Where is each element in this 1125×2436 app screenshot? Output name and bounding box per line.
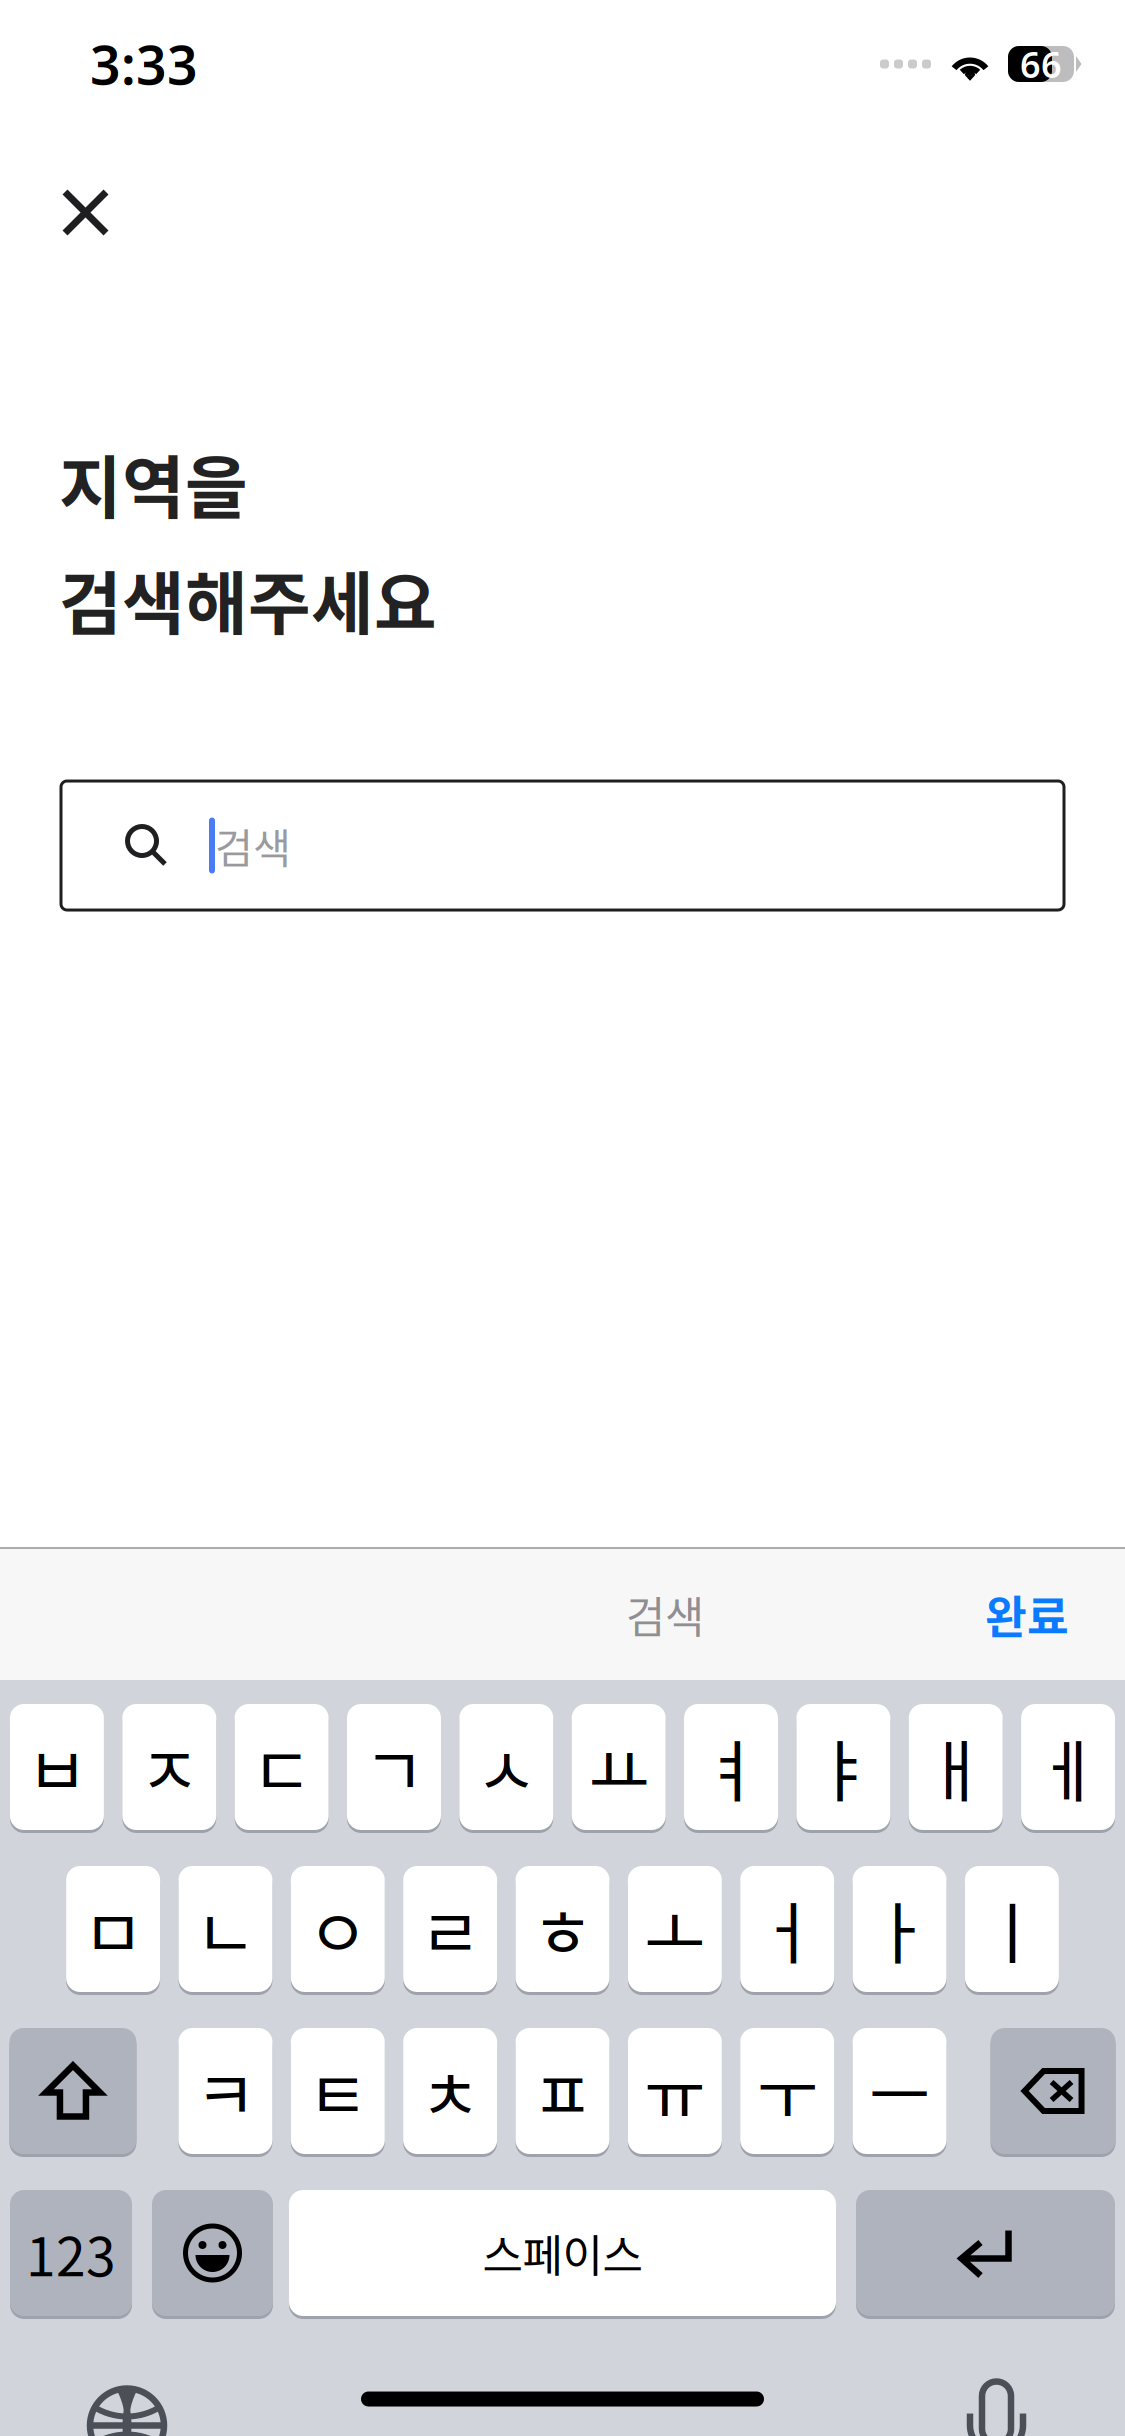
staticText: 검색해주세요 <box>59 550 437 648</box>
button[interactable]: ㅗ <box>628 1866 722 1992</box>
staticText: ㅌ <box>307 2043 368 2139</box>
button[interactable]: Delete <box>990 2028 1115 2154</box>
button[interactable]: 스페이스 <box>289 2190 836 2316</box>
button[interactable]: ㅜ <box>740 2028 834 2154</box>
staticText: ㄷ <box>251 1719 312 1815</box>
staticText: ㅇ <box>307 1881 368 1977</box>
staticText: ㅛ <box>588 1719 649 1815</box>
staticText: 스페이스 <box>482 2221 642 2285</box>
button[interactable]: ㄴ <box>178 1866 272 1992</box>
button[interactable]: Return <box>856 2190 1115 2316</box>
button[interactable]: ㅣ <box>965 1866 1059 1992</box>
button[interactable]: Emoji <box>152 2190 273 2316</box>
staticText: ㅕ <box>700 1719 761 1815</box>
button[interactable]: ㅇ <box>291 1866 385 1992</box>
button[interactable]: ㅌ <box>291 2028 385 2154</box>
button[interactable]: ㅛ <box>572 1704 666 1830</box>
staticText: 123 <box>26 2214 116 2292</box>
button[interactable]: ㄱ <box>347 1704 441 1830</box>
staticText: 검색 <box>215 816 291 875</box>
staticText: ㅠ <box>644 2043 705 2139</box>
staticText: ㅑ <box>813 1719 874 1815</box>
button[interactable]: Close <box>40 167 131 258</box>
button[interactable]: Next keyboard <box>87 2385 167 2436</box>
button[interactable]: 완료 <box>963 1557 1091 1672</box>
button[interactable]: ㅕ <box>684 1704 778 1830</box>
staticText: ㅎ <box>532 1881 593 1977</box>
button[interactable]: ㄷ <box>235 1704 329 1830</box>
button[interactable]: ㅓ <box>740 1866 834 1992</box>
button[interactable]: ㅊ <box>403 2028 497 2154</box>
button[interactable]: ㅏ <box>853 1866 947 1992</box>
staticText: ㅓ <box>757 1881 818 1977</box>
button[interactable]: ㄹ <box>403 1866 497 1992</box>
button[interactable]: ㅈ <box>122 1704 216 1830</box>
staticText: 66 <box>1020 40 1062 88</box>
staticText: ㅂ <box>26 1719 87 1815</box>
staticText: ㅏ <box>869 1881 930 1977</box>
button[interactable]: Dictate <box>967 2381 1026 2436</box>
button[interactable]: ㅍ <box>515 2028 609 2154</box>
staticText: ㅣ <box>981 1881 1042 1977</box>
staticText: ㅋ <box>195 2043 256 2139</box>
staticText: 3:33 <box>90 29 198 99</box>
button[interactable]: ㅠ <box>628 2028 722 2154</box>
button[interactable]: Shift <box>9 2028 136 2154</box>
staticText: ㄹ <box>420 1881 481 1977</box>
button[interactable]: ㅑ <box>796 1704 890 1830</box>
button[interactable]: ㅁ <box>66 1866 160 1992</box>
button[interactable]: 검색 <box>61 781 1064 910</box>
button[interactable]: ㅡ <box>853 2028 947 2154</box>
button[interactable]: ㅂ <box>10 1704 104 1830</box>
staticText: ㅍ <box>532 2043 593 2139</box>
staticText: ㅊ <box>420 2043 481 2139</box>
staticText: ㅜ <box>757 2043 818 2139</box>
button[interactable]: ㅎ <box>515 1866 609 1992</box>
button[interactable]: ㅋ <box>178 2028 272 2154</box>
staticText: 완료 <box>985 1582 1069 1647</box>
button[interactable]: ㅐ <box>909 1704 1003 1830</box>
staticText: ㅁ <box>83 1881 144 1977</box>
button[interactable]: ㅅ <box>459 1704 553 1830</box>
staticText: ㄱ <box>363 1719 424 1815</box>
staticText: ㅐ <box>925 1719 986 1815</box>
staticText: ㅔ <box>1038 1719 1099 1815</box>
staticText: 지역을 <box>59 434 248 532</box>
staticText: ㅡ <box>869 2043 930 2139</box>
staticText: 검색 <box>626 1584 704 1645</box>
staticText: ㄴ <box>195 1881 256 1977</box>
staticText: ㅅ <box>476 1719 537 1815</box>
button[interactable]: 123 <box>10 2190 132 2316</box>
staticText: ㅈ <box>139 1719 200 1815</box>
button[interactable]: ㅔ <box>1021 1704 1115 1830</box>
staticText: ㅗ <box>644 1881 705 1977</box>
